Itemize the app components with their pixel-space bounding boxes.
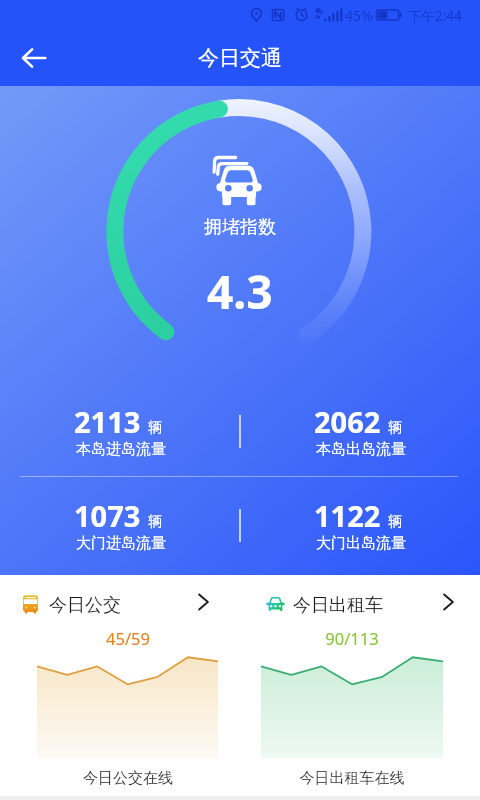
staticText: 下午2:44 <box>408 7 462 25</box>
staticText: 2062 <box>314 402 381 441</box>
staticText: 90/113 <box>292 627 412 649</box>
staticText: 辆 <box>388 513 402 531</box>
button[interactable]: 今日公交 <box>0 575 240 796</box>
staticText: 45/59 <box>68 627 188 649</box>
button[interactable]: 今日出租车 <box>240 575 480 796</box>
staticText: 今日交通 <box>198 45 282 71</box>
staticText: 今日出租车 <box>293 594 383 617</box>
staticText: 辆 <box>388 419 402 437</box>
staticText: 辆 <box>148 419 162 437</box>
staticText: 今日公交在线 <box>58 769 198 788</box>
staticText: 本岛出岛流量 <box>316 440 406 459</box>
staticText: 今日出租车在线 <box>282 769 422 788</box>
staticText: 拥堵指数 <box>204 216 276 239</box>
staticText: 1073 <box>74 496 141 535</box>
other: More <box>194 590 213 614</box>
staticText: 1122 <box>314 496 381 535</box>
staticText: 大门出岛流量 <box>316 534 406 553</box>
staticText: 4.3 <box>207 260 273 323</box>
staticText: 2113 <box>74 402 141 441</box>
staticText: 今日公交 <box>49 594 121 617</box>
staticText: 辆 <box>148 513 162 531</box>
staticText: 45% <box>345 6 373 25</box>
other: More <box>439 590 458 614</box>
staticText: 本岛进岛流量 <box>76 440 166 459</box>
button[interactable]: Back <box>12 36 56 80</box>
staticText: 大门进岛流量 <box>76 534 166 553</box>
